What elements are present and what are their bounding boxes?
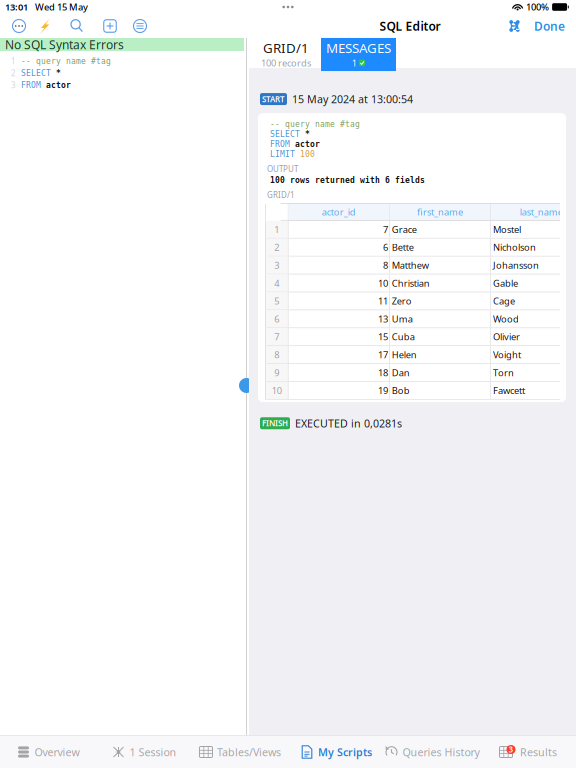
staticText: Nicholson [493,241,536,253]
staticText: Torn [493,366,514,379]
staticText: * [305,130,310,139]
staticText: Johansson [493,259,539,271]
staticText: LIMIT [270,150,300,159]
staticText: 17 [378,348,388,361]
staticText: My Scripts [318,745,372,759]
staticText: EXECUTED in 0,0281s [295,416,402,430]
staticText: Zero [392,295,412,307]
staticText: No SQL Syntax Errors [5,36,124,52]
button[interactable]: Search [66,15,88,37]
staticText: 2 [274,241,279,253]
staticText: 2 [11,68,16,78]
staticText: FINISH [262,418,288,428]
button[interactable]: New query [99,15,121,37]
staticText: Overview [34,745,79,759]
staticText: -- query name #tag [270,120,360,129]
staticText: Mostel [493,223,521,235]
staticText: 15 May 2024 at 13:00:54 [292,92,413,106]
staticText: GRID/1 [267,189,295,200]
staticText: 100% [526,1,549,13]
staticText: SELECT [270,130,305,139]
button[interactable]: 1 Session [96,736,192,768]
staticText: Dan [392,366,410,379]
button[interactable]: Done [534,18,565,34]
staticText: 1 Session [129,745,176,759]
staticText: 8 [274,348,279,361]
staticText: Uma [392,313,413,325]
staticText: Cage [493,295,515,307]
staticText: 10 [272,384,282,397]
staticText: Wood [493,313,519,325]
staticText: 15 [378,330,388,343]
staticText: Voight [493,348,521,361]
staticText: 3 [508,744,513,755]
staticText: Fawcett [493,384,525,397]
staticText: actor [46,81,71,90]
staticText: 6 [383,241,388,253]
staticText: 3 [274,259,279,271]
staticText: Grace [392,223,417,235]
staticText: 6 [274,313,279,325]
staticText: 100 records [261,57,311,69]
staticText: MESSAGES [326,39,391,57]
staticText: last_name [520,206,563,218]
staticText: 1 [352,57,357,69]
staticText: 13 [378,313,388,325]
staticText: 18 [378,366,388,379]
staticText: START [262,94,285,104]
staticText: SQL Editor [379,18,440,34]
button[interactable]: Query list [129,15,151,37]
button[interactable]: More options [8,15,30,37]
staticText: -- query name #tag [21,57,111,66]
button[interactable]: MESSAGES [321,38,396,71]
staticText: 4 [274,277,279,289]
staticText: 7 [383,223,388,235]
button[interactable]: 3 [480,736,576,768]
staticText: FROM [21,81,46,90]
button[interactable]: Tables/Views [192,736,288,768]
staticText: * [56,69,61,78]
staticText: 19 [378,384,388,397]
staticText: 1 [274,223,279,235]
staticText: actor [295,140,320,149]
staticText: Christian [392,277,430,289]
staticText: Olivier [493,330,520,343]
staticText: OUTPUT [267,163,298,174]
staticText: 8 [383,259,388,271]
staticText: Tables/Views [217,745,281,759]
staticText: 1 [11,56,16,66]
staticText: 10 [378,277,388,289]
button[interactable]: My Scripts [288,736,384,768]
staticText: first_name [417,206,463,218]
button[interactable]: Execute query [34,15,56,37]
staticText: SELECT [21,69,56,78]
staticText: FROM [270,140,295,149]
staticText: Results [520,745,557,759]
staticText: Queries History [402,745,479,759]
staticText: 100 rows returned with 6 fields [270,176,425,185]
staticText: Done [534,18,565,34]
button[interactable]: Queries History [384,736,480,768]
staticText: 5 [274,295,279,307]
staticText: 11 [378,295,388,307]
staticText: Bette [392,241,414,253]
staticText: Matthew [392,259,429,271]
button[interactable]: Overview [0,736,96,768]
staticText: Cuba [392,330,415,343]
staticText: Wed 15 May [35,1,88,13]
button[interactable]: Split view [509,20,520,32]
staticText: Bob [392,384,410,397]
staticText: 13:01 [5,1,28,13]
staticText: 7 [274,330,279,343]
staticText: 9 [274,366,279,379]
staticText: Gable [493,277,518,289]
staticText: 3 [11,80,16,90]
staticText: 100 [300,150,315,159]
staticText: GRID/1 [263,39,309,57]
button[interactable]: GRID/1 [256,38,316,71]
staticText: Helen [392,348,417,361]
staticText: actor_id [322,206,356,218]
